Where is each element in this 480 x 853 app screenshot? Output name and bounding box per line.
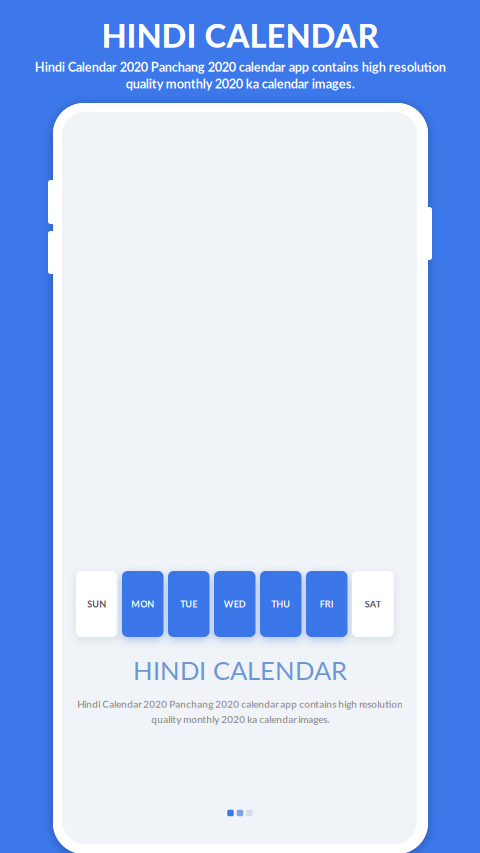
staticText: FRI bbox=[320, 599, 334, 609]
staticText: MON bbox=[131, 599, 154, 609]
staticText: Hindi Calendar 2020 Panchang 2020 calend… bbox=[77, 698, 403, 725]
button[interactable]: SAT bbox=[352, 571, 393, 637]
button[interactable]: THU bbox=[260, 571, 301, 637]
staticText: TUE bbox=[180, 599, 197, 609]
staticText: Hindi Calendar 2020 Panchang 2020 calend… bbox=[34, 59, 445, 91]
button[interactable]: MON bbox=[122, 571, 163, 637]
staticText: WED bbox=[224, 599, 246, 609]
button[interactable]: WED bbox=[214, 571, 255, 637]
staticText: SAT bbox=[365, 599, 381, 609]
button[interactable]: SUN bbox=[76, 571, 117, 637]
staticText: HINDI CALENDAR bbox=[101, 15, 378, 55]
staticText: SUN bbox=[87, 599, 106, 609]
button[interactable]: FRI bbox=[306, 571, 347, 637]
staticText: THU bbox=[271, 599, 290, 609]
staticText: HINDI CALENDAR bbox=[133, 655, 347, 685]
button[interactable]: TUE bbox=[168, 571, 209, 637]
